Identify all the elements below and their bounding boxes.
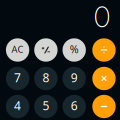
- staticText: AC: [12, 43, 24, 55]
- button[interactable]: 8: [34, 67, 58, 90]
- staticText: 9: [71, 70, 78, 86]
- button[interactable]: Divide: [92, 38, 116, 62]
- button[interactable]: 7: [6, 67, 29, 90]
- staticText: 7: [14, 70, 21, 86]
- staticText: 0: [94, 0, 110, 34]
- button[interactable]: 6: [62, 95, 86, 118]
- button[interactable]: Subtract: [92, 95, 116, 118]
- staticText: %: [70, 42, 79, 56]
- staticText: 6: [71, 98, 78, 114]
- button[interactable]: Plus minus: [34, 38, 58, 62]
- button[interactable]: Multiply: [92, 67, 116, 90]
- button[interactable]: 5: [34, 95, 58, 118]
- button[interactable]: 9: [62, 67, 86, 90]
- staticText: 5: [42, 98, 49, 114]
- button[interactable]: %: [62, 38, 86, 62]
- staticText: 8: [42, 70, 49, 86]
- staticText: 4: [14, 98, 21, 114]
- button[interactable]: 4: [6, 95, 29, 118]
- button[interactable]: AC: [6, 38, 29, 62]
